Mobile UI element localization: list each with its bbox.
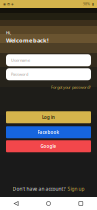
staticText: Don't have an account?	[12, 186, 65, 192]
staticText: Log in	[42, 114, 55, 120]
button[interactable]: Home	[32, 197, 65, 210]
staticText: Facebook	[37, 129, 59, 135]
button[interactable]: Google	[6, 140, 91, 152]
button[interactable]: Username	[6, 54, 91, 66]
staticText: Welcome back!	[6, 36, 49, 44]
staticText: Hi,	[6, 30, 11, 35]
staticText: Sign up	[67, 186, 84, 192]
staticText: 98% ▮	[83, 2, 94, 6]
button[interactable]: Password	[6, 68, 91, 80]
staticText: ◉ ◓ ◈	[3, 2, 14, 6]
button[interactable]: Log in	[6, 111, 91, 123]
staticText: Password	[11, 72, 28, 77]
button[interactable]: Recents	[65, 197, 97, 210]
staticText: Forgot your password?	[51, 84, 91, 90]
button[interactable]: Forgot your password?	[6, 84, 91, 90]
staticText: Google	[40, 143, 56, 149]
button[interactable]: Sign up	[67, 186, 84, 192]
staticText: Username	[11, 58, 30, 63]
button[interactable]: Back	[0, 197, 32, 210]
button[interactable]: Facebook	[6, 126, 91, 138]
